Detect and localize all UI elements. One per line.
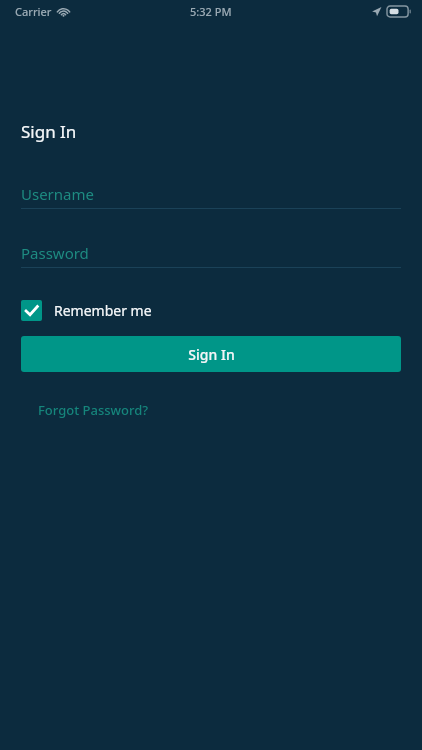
staticText: Sign In (21, 120, 77, 143)
staticText: Forgot Password? (38, 401, 149, 419)
button[interactable]: Forgot Password? (21, 399, 153, 421)
button[interactable]: Password (21, 243, 401, 268)
staticText: 5:32 PM (190, 4, 232, 19)
staticText: Username (21, 184, 94, 204)
staticText: Carrier (15, 4, 52, 19)
button[interactable]: Sign In (21, 336, 401, 372)
staticText: Remember me (54, 301, 152, 320)
staticText: Password (21, 243, 89, 263)
staticText: Sign In (188, 345, 235, 364)
other: Remember me checkbox, checked (21, 300, 42, 321)
button[interactable]: Remember me checkbox, checked (21, 298, 152, 323)
button[interactable]: Username (21, 184, 401, 209)
